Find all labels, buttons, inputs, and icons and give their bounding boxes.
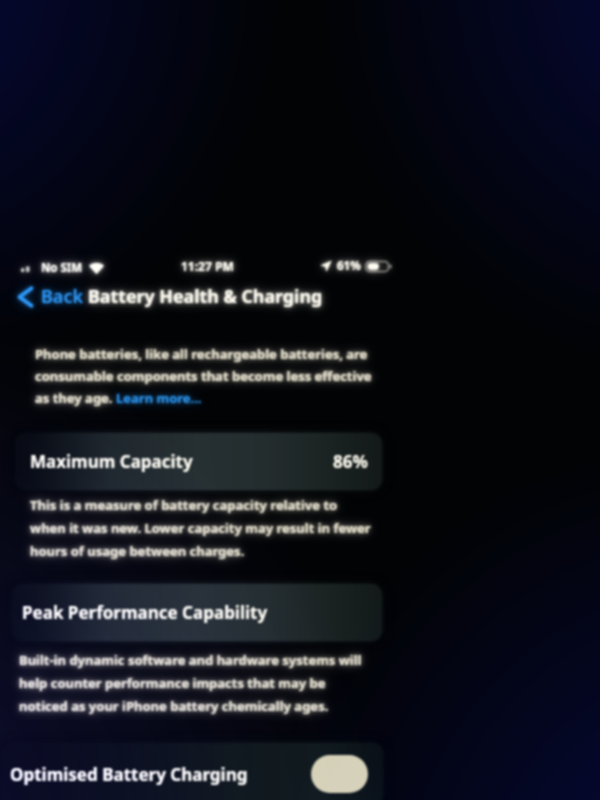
- staticText: help counter performance impacts that ma…: [19, 674, 326, 692]
- staticText: Maximum Capacity: [30, 450, 193, 473]
- button[interactable]: Back: [18, 284, 84, 309]
- staticText: Maximum Capacity: [30, 450, 193, 473]
- staticText: This is a measure of battery capacity re…: [30, 496, 338, 514]
- button[interactable]: Optimised Battery Charging toggle: [311, 755, 368, 793]
- staticText: 61%: [337, 258, 361, 274]
- staticText: hours of usage between charges.: [30, 542, 245, 560]
- other: Back: [18, 287, 33, 307]
- button[interactable]: Optimised Battery Charging toggle: [311, 755, 368, 793]
- staticText: 11:27 PM: [181, 258, 234, 274]
- staticText: as they age.: [35, 389, 116, 407]
- staticText: 61%: [337, 258, 361, 274]
- staticText: 11:27 PM: [181, 258, 234, 274]
- button[interactable]: Maximum Capacity: [15, 433, 382, 490]
- staticText: consumable components that become less e…: [35, 367, 372, 385]
- other: Back: [18, 287, 33, 307]
- staticText: Battery Health & Charging: [88, 284, 323, 308]
- staticText: This is a measure of battery capacity re…: [30, 496, 338, 514]
- staticText: Back: [41, 284, 84, 309]
- staticText: Optimised Battery Charging: [10, 763, 248, 786]
- staticText: noticed as your iPhone battery chemicall…: [19, 697, 329, 715]
- staticText: Learn more...: [116, 389, 202, 407]
- button[interactable]: Learn more...: [116, 389, 202, 407]
- button[interactable]: Optimised Battery Charging: [1, 743, 383, 800]
- staticText: when it was new. Lower capacity may resu…: [30, 519, 371, 537]
- button[interactable]: Back: [18, 284, 84, 309]
- staticText: help counter performance impacts that ma…: [19, 674, 326, 692]
- staticText: Learn more...: [116, 389, 202, 407]
- staticText: when it was new. Lower capacity may resu…: [30, 519, 371, 537]
- other: Back: [18, 287, 33, 307]
- staticText: 61%: [337, 258, 361, 274]
- button[interactable]: Optimised Battery Charging toggle: [311, 755, 368, 793]
- staticText: No SIM: [41, 260, 83, 276]
- staticText: No SIM: [41, 260, 83, 276]
- staticText: Optimised Battery Charging: [10, 763, 248, 786]
- staticText: Learn more...: [116, 389, 202, 407]
- staticText: noticed as your iPhone battery chemicall…: [19, 697, 329, 715]
- staticText: 86%: [333, 450, 368, 473]
- staticText: Built-in dynamic software and hardware s…: [19, 651, 362, 669]
- staticText: Back: [41, 284, 84, 309]
- staticText: noticed as your iPhone battery chemicall…: [19, 697, 329, 715]
- staticText: Battery Health & Charging: [88, 284, 323, 308]
- staticText: Peak Performance Capability: [22, 601, 268, 624]
- staticText: Battery Health & Charging: [88, 284, 323, 308]
- staticText: Peak Performance Capability: [22, 601, 268, 624]
- staticText: Optimised Battery Charging: [10, 763, 248, 786]
- staticText: 86%: [333, 450, 368, 473]
- staticText: Built-in dynamic software and hardware s…: [19, 651, 362, 669]
- button[interactable]: Maximum Capacity: [15, 433, 382, 490]
- staticText: consumable components that become less e…: [35, 367, 372, 385]
- staticText: help counter performance impacts that ma…: [19, 674, 326, 692]
- staticText: Phone batteries, like all rechargeable b…: [35, 345, 368, 363]
- staticText: as they age.: [35, 389, 116, 407]
- staticText: 11:27 PM: [181, 258, 234, 274]
- staticText: consumable components that become less e…: [35, 367, 372, 385]
- staticText: Phone batteries, like all rechargeable b…: [35, 345, 368, 363]
- staticText: This is a measure of battery capacity re…: [30, 496, 338, 514]
- button[interactable]: Back: [18, 284, 84, 309]
- button[interactable]: Peak Performance Capability: [12, 584, 382, 641]
- staticText: Back: [41, 284, 84, 309]
- button[interactable]: Peak Performance Capability: [12, 584, 382, 641]
- button[interactable]: Peak Performance Capability: [12, 584, 382, 641]
- button[interactable]: Learn more...: [116, 389, 202, 407]
- staticText: as they age.: [35, 389, 116, 407]
- staticText: hours of usage between charges.: [30, 542, 245, 560]
- staticText: when it was new. Lower capacity may resu…: [30, 519, 371, 537]
- button[interactable]: Maximum Capacity: [15, 433, 382, 490]
- staticText: hours of usage between charges.: [30, 542, 245, 560]
- staticText: Maximum Capacity: [30, 450, 193, 473]
- staticText: No SIM: [41, 260, 83, 276]
- button[interactable]: Optimised Battery Charging: [1, 743, 383, 800]
- staticText: Peak Performance Capability: [22, 601, 268, 624]
- staticText: Phone batteries, like all rechargeable b…: [35, 345, 368, 363]
- button[interactable]: Optimised Battery Charging: [1, 743, 383, 800]
- button[interactable]: Learn more...: [116, 389, 202, 407]
- staticText: 86%: [333, 450, 368, 473]
- staticText: Built-in dynamic software and hardware s…: [19, 651, 362, 669]
